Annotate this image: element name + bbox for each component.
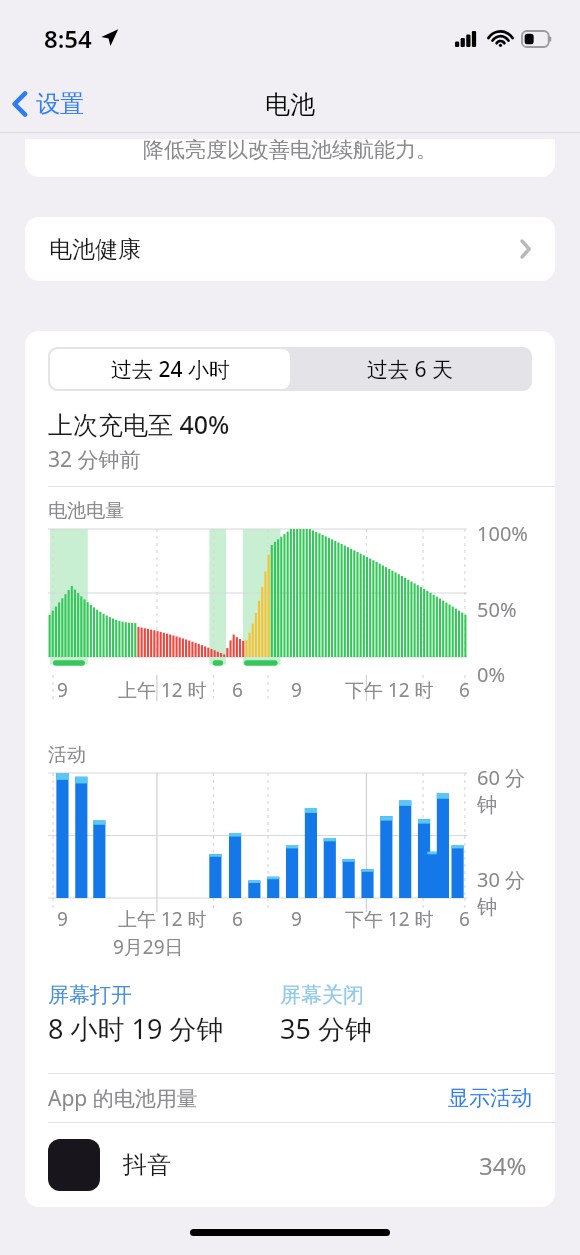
- staticText: 显示活动: [448, 1085, 532, 1111]
- staticText: 电池电量: [48, 499, 124, 523]
- staticText: 上午 12 时: [118, 677, 207, 701]
- staticText: 活动: [48, 743, 86, 767]
- staticText: 9: [57, 906, 68, 930]
- staticText: 抖音: [123, 1150, 171, 1180]
- staticText: 9: [291, 906, 302, 930]
- staticText: 上次充电至 40%: [48, 407, 230, 441]
- staticText: 50%: [477, 596, 517, 623]
- staticText: 电池健康: [49, 235, 141, 264]
- staticText: 9月29日: [113, 934, 184, 960]
- staticText: 30 分钟: [477, 866, 545, 918]
- staticText: 屏幕打开: [48, 982, 132, 1008]
- button[interactable]: 电池健康: [25, 217, 555, 281]
- staticText: 降低亮度以改善电池续航能力。: [143, 139, 437, 163]
- staticText: 32 分钟前: [48, 445, 141, 474]
- button[interactable]: 设置: [0, 83, 96, 125]
- staticText: 下午 12 时: [345, 677, 434, 701]
- staticText: App 的电池用量: [48, 1084, 198, 1113]
- staticText: 6: [232, 677, 243, 701]
- staticText: 0%: [477, 661, 506, 688]
- staticText: 6: [459, 906, 470, 930]
- staticText: 8:54: [44, 22, 92, 55]
- button[interactable]: 过去 6 天: [290, 349, 530, 389]
- button[interactable]: 过去 24 小时: [50, 349, 290, 389]
- button[interactable]: 显示活动: [425, 1079, 555, 1117]
- staticText: 35 分钟: [280, 1010, 372, 1047]
- staticText: 9: [57, 677, 68, 701]
- staticText: 过去 6 天: [367, 355, 453, 384]
- staticText: 设置: [36, 89, 84, 119]
- staticText: 100%: [477, 520, 528, 547]
- staticText: 下午 12 时: [345, 906, 434, 930]
- button[interactable]: 抖音: [25, 1123, 555, 1207]
- staticText: 8 小时 19 分钟: [48, 1010, 224, 1047]
- staticText: 6: [232, 906, 243, 930]
- staticText: 60 分钟: [477, 764, 545, 818]
- staticText: 9: [291, 677, 302, 701]
- staticText: 上午 12 时: [118, 906, 207, 930]
- staticText: 屏幕关闭: [280, 982, 364, 1008]
- staticText: 6: [459, 677, 470, 701]
- staticText: 34%: [479, 1149, 527, 1182]
- staticText: 过去 24 小时: [111, 355, 230, 384]
- staticText: 电池: [265, 89, 315, 120]
